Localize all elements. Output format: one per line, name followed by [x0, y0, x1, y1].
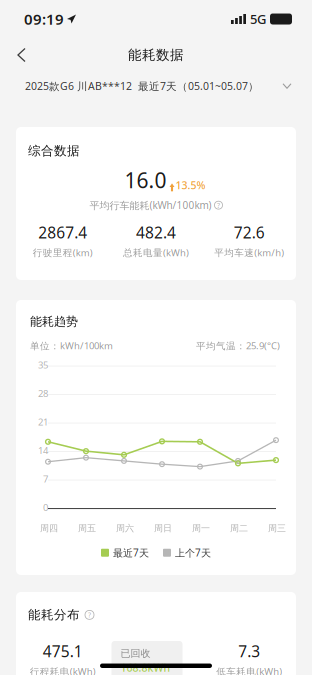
staticText: 最近7天 [113, 546, 149, 559]
staticText: 16.0 [124, 166, 166, 194]
staticText: 周六 [116, 523, 134, 534]
staticText: 475.1 [43, 641, 83, 662]
staticText: 周三 [268, 523, 286, 534]
staticText: 7 [43, 472, 48, 485]
staticText: 周四 [40, 523, 58, 534]
staticText: ? [88, 610, 91, 620]
staticText: 0 [43, 501, 48, 514]
staticText: 周二 [230, 523, 248, 534]
staticText: 21 [38, 415, 48, 428]
button[interactable]: 2025款G6 川AB***12 最近7天（05.01~05.07） [0, 72, 312, 100]
staticText: 09:19 [24, 9, 64, 29]
staticText: 2025款G6 川AB***12 最近7天（05.01~05.07） [25, 79, 259, 93]
staticText: 2867.4 [38, 222, 87, 243]
staticText: 能耗趋势 [30, 314, 78, 329]
button[interactable]: Back [0, 39, 37, 70]
staticText: 35 [38, 358, 48, 371]
staticText: 7.3 [238, 641, 260, 662]
staticText: 28 [38, 387, 48, 400]
staticText: 能耗数据 [128, 46, 184, 63]
staticText: 行程耗电(kWh) [30, 665, 96, 675]
staticText: 上个7天 [175, 546, 211, 559]
staticText: 平均气温：25.9(°C) [196, 339, 280, 352]
staticText: 平均车速(km/h) [214, 246, 284, 259]
staticText: 5G [250, 10, 266, 28]
staticText: 14 [38, 444, 48, 457]
staticText: 单位：kWh/100km [30, 339, 113, 352]
staticText: 总耗电量(kWh) [123, 246, 189, 259]
staticText: 周五 [78, 523, 96, 534]
staticText: 综合数据 [28, 143, 80, 159]
staticText: 168.8kWh [120, 661, 170, 675]
staticText: 已回收 [120, 647, 150, 660]
staticText: 周日 [154, 523, 172, 534]
staticText: 482.4 [136, 222, 176, 243]
staticText: ? [217, 200, 220, 210]
staticText: 能耗分布 [28, 607, 80, 623]
staticText: 低车耗电(kWh) [216, 665, 282, 675]
staticText: 平均行车能耗(kWh/100km) [89, 198, 211, 212]
staticText: 72.6 [234, 222, 265, 243]
staticText: 周一 [192, 523, 210, 534]
staticText: 行驶里程(km) [33, 246, 93, 259]
staticText: 13.5% [175, 178, 205, 192]
